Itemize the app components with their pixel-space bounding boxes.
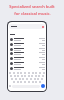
button[interactable]	[10, 47, 45, 51]
button[interactable]	[10, 66, 45, 70]
staticText: for classical music.	[14, 11, 51, 16]
button[interactable]: Search	[41, 84, 45, 88]
button[interactable]	[9, 24, 45, 29]
button[interactable]	[10, 61, 45, 65]
button[interactable]	[10, 37, 45, 41]
button[interactable]	[10, 51, 45, 55]
staticText: Specialized search built	[9, 4, 55, 9]
button[interactable]	[10, 42, 45, 46]
button[interactable]	[10, 56, 45, 60]
